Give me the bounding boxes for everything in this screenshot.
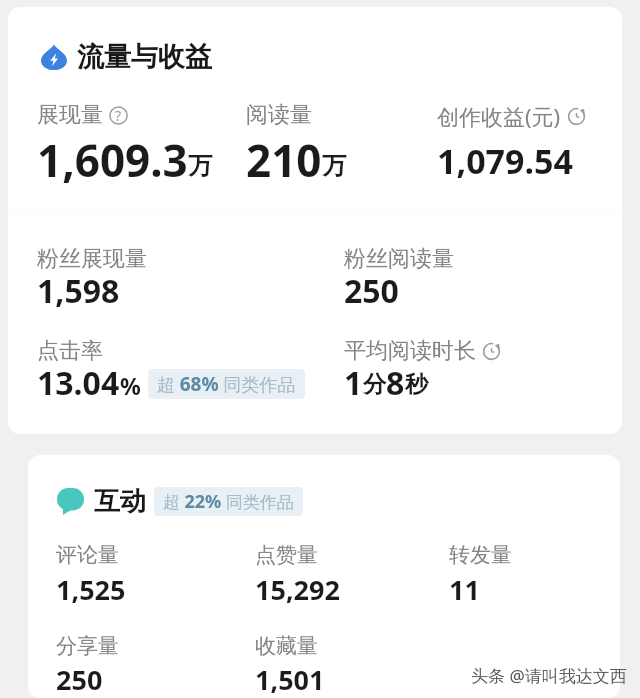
- button[interactable]: 互动: [57, 485, 303, 518]
- staticText: 1,079.54: [437, 138, 573, 184]
- staticText: 超 68% 同类作品: [157, 371, 296, 397]
- staticText: %: [120, 370, 141, 401]
- staticText: 点击率: [37, 337, 103, 365]
- staticText: 粉丝展现量: [37, 245, 147, 273]
- staticText: 互动: [94, 485, 146, 518]
- staticText: 15,292: [255, 571, 340, 608]
- staticText: 万: [188, 151, 212, 181]
- other: Refresh: [567, 107, 586, 126]
- staticText: 250: [56, 661, 103, 698]
- staticText: 1: [344, 361, 363, 405]
- button[interactable]: 流量与收益: [41, 40, 212, 74]
- staticText: 分享量: [56, 633, 119, 659]
- staticText: 转发量: [449, 542, 512, 568]
- staticText: 头条 @请叫我达文西: [471, 664, 627, 687]
- staticText: 1,598: [37, 269, 120, 313]
- staticText: 210: [246, 130, 322, 190]
- staticText: 秒: [405, 370, 428, 399]
- staticText: 展现量: [37, 101, 103, 129]
- staticText: 收藏量: [255, 633, 318, 659]
- staticText: 1,501: [255, 661, 325, 698]
- staticText: 点赞量: [255, 542, 318, 568]
- staticText: 1,609.3: [37, 130, 188, 190]
- staticText: 评论量: [56, 542, 119, 568]
- staticText: 粉丝阅读量: [344, 245, 454, 273]
- staticText: 13.04: [37, 361, 120, 405]
- staticText: 平均阅读时长: [344, 337, 476, 365]
- staticText: 阅读量: [246, 101, 312, 129]
- staticText: 1,525: [56, 571, 126, 608]
- staticText: 8: [386, 361, 405, 405]
- staticText: 万: [322, 151, 346, 181]
- staticText: 11: [449, 571, 480, 608]
- staticText: 250: [344, 269, 399, 313]
- button[interactable]: Help: [109, 106, 128, 125]
- staticText: 超 22% 同类作品: [163, 489, 294, 514]
- staticText: 分: [363, 370, 386, 399]
- button[interactable]: 超 22% 同类作品: [154, 487, 303, 516]
- staticText: 创作收益(元): [437, 101, 561, 131]
- other: Refresh: [482, 342, 501, 361]
- staticText: 流量与收益: [77, 40, 212, 74]
- button[interactable]: 超 68% 同类作品: [148, 369, 305, 399]
- staticText: ?: [115, 106, 122, 125]
